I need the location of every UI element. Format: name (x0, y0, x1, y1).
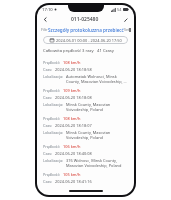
staticText: 2024-06-20 18:18:08 (55, 95, 92, 100)
button[interactable]: Prędkość: (43, 59, 128, 87)
staticText: 109 km/h (63, 88, 81, 93)
staticText: 2024-06-20 18:18:07 (55, 123, 92, 128)
button[interactable]: 2024-06-01 00:00 - 2024-06-20 17:50 (43, 36, 128, 44)
staticText: 2024-06-01 00:00 - 2024-06-20 17:50 (56, 38, 122, 43)
staticText: Filtr (41, 27, 48, 32)
staticText: 106 km/h (63, 144, 81, 149)
staticText: Szczegóły protokoluzzna przebiecć (48, 27, 124, 33)
button[interactable]: Back (41, 15, 50, 24)
staticText: Czas: (43, 95, 53, 100)
button[interactable]: Prędkość: (43, 143, 128, 171)
button[interactable]: Prędkość: (43, 87, 128, 115)
staticText: Prędkość: (43, 88, 61, 93)
staticText: 2024-06-20 18:41:16 (55, 179, 92, 184)
staticText: Czas: (43, 67, 53, 72)
staticText: Lokalizacja: (43, 102, 64, 107)
staticText: 011-025480 (71, 16, 99, 23)
staticText: Minsk County, Masovian Voivodeship, Pola… (66, 130, 128, 140)
staticText: 2024-06-20 18:40:08 (55, 151, 92, 156)
staticText: 2024-06-20 18:18:58 (55, 67, 92, 72)
staticText: Czas: (43, 151, 53, 156)
staticText: Prędkość: (43, 116, 61, 121)
staticText: 105 km/h (63, 172, 81, 177)
staticText: Set (124, 27, 130, 32)
staticText: Lokalizacja: (43, 130, 64, 135)
staticText: Prędkość: (43, 60, 61, 65)
button[interactable]: Szczegóły protokoluzzna przebiecć (48, 27, 124, 33)
staticText: 17:10 (42, 7, 53, 13)
staticText: Czas: (43, 123, 53, 128)
staticText: Całkowita prędkość 3 razy (43, 48, 94, 54)
staticText: Automatab Wolnosci, Minsk County, Masovi… (66, 74, 128, 84)
button[interactable]: Prędkość: (43, 115, 128, 143)
staticText: Lokalizacja: (43, 74, 64, 79)
staticText: Czas: (43, 179, 53, 184)
staticText: 108 km/h (63, 116, 81, 121)
button[interactable]: Prędkość: (43, 171, 128, 187)
staticText: 41 Czasy (97, 48, 114, 54)
button[interactable]: Edit (121, 15, 130, 24)
staticText: 108 km/h (63, 60, 81, 65)
staticText: Lokalizacja: (43, 158, 64, 163)
staticText: Prędkość: (43, 144, 61, 149)
staticText: Minsk County, Masovian Voivodeship, Pola… (66, 102, 128, 112)
staticText: 376 Wolnosc, Minsk County, Masovian Voiv… (66, 158, 128, 168)
staticText: 54 (117, 7, 122, 12)
staticText: Prędkość: (43, 172, 61, 177)
